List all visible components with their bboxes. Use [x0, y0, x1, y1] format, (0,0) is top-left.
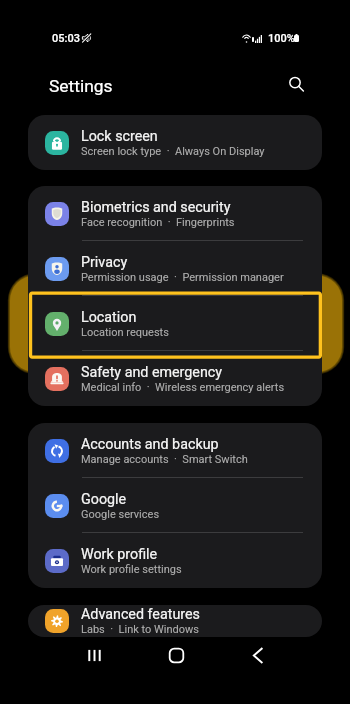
- staticText: Screen lock type · Always On Display: [81, 145, 265, 158]
- staticText: Privacy: [81, 254, 128, 271]
- staticText: Work profile: [81, 546, 158, 563]
- button[interactable]: Safety and emergency: [28, 351, 322, 406]
- staticText: Safety and emergency: [81, 364, 223, 381]
- staticText: Labs · Link to Windows: [81, 623, 199, 636]
- button[interactable]: Accounts and backup: [28, 423, 322, 478]
- button[interactable]: Lock screen: [28, 115, 322, 170]
- staticText: Work profile settings: [81, 563, 182, 576]
- staticText: Settings: [49, 76, 113, 96]
- staticText: 100%: [268, 32, 295, 45]
- staticText: Biometrics and security: [81, 199, 231, 216]
- staticText: 05:03: [52, 32, 80, 45]
- button[interactable]: Google: [28, 478, 322, 533]
- staticText: Permission usage · Permission manager: [81, 271, 284, 284]
- staticText: Advanced features: [81, 606, 200, 623]
- button[interactable]: Location: [28, 296, 322, 351]
- staticText: Google services: [81, 508, 160, 521]
- staticText: Location: [81, 309, 137, 326]
- staticText: Accounts and backup: [81, 436, 219, 453]
- button[interactable]: Recent apps: [76, 637, 113, 674]
- button[interactable]: Search: [284, 72, 306, 94]
- button[interactable]: Work profile: [28, 533, 322, 588]
- button[interactable]: Home: [158, 637, 195, 674]
- button[interactable]: Advanced features: [28, 605, 322, 637]
- staticText: Medical info · Wireless emergency alerts: [81, 381, 285, 394]
- staticText: Location requests: [81, 326, 169, 339]
- button[interactable]: Back: [239, 637, 276, 674]
- staticText: Manage accounts · Smart Switch: [81, 453, 248, 466]
- staticText: Google: [81, 491, 127, 508]
- button[interactable]: Privacy: [28, 241, 322, 296]
- staticText: Face recognition · Fingerprints: [81, 216, 235, 229]
- button[interactable]: Biometrics and security: [28, 186, 322, 241]
- staticText: Lock screen: [81, 128, 158, 145]
